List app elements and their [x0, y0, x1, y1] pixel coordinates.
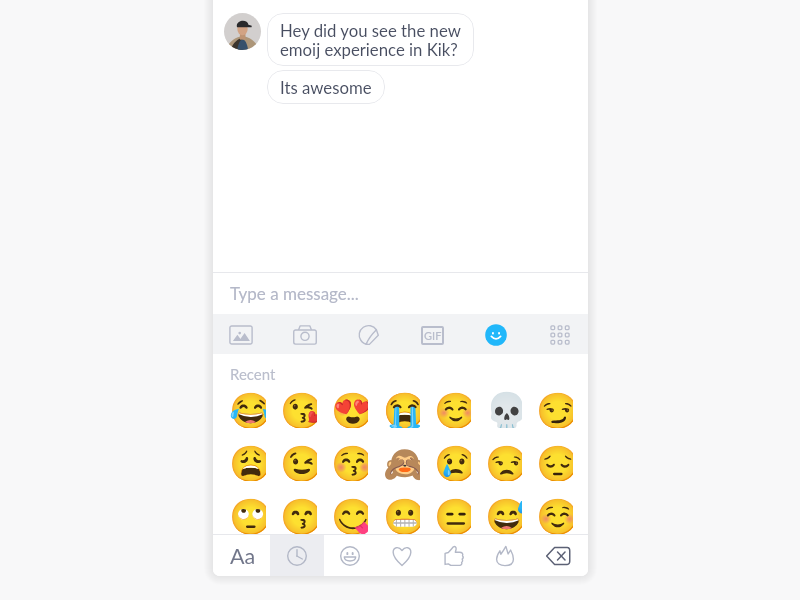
staticText: 😏	[536, 391, 573, 428]
button[interactable]: Text	[213, 535, 270, 576]
staticText: 😚	[331, 444, 368, 481]
button[interactable]: Recent	[270, 535, 324, 576]
button[interactable]: Backspace	[534, 535, 588, 576]
staticText: 😅	[485, 497, 522, 534]
button[interactable]: Emoji	[476, 314, 516, 354]
button[interactable]: Emoji	[536, 391, 573, 428]
button[interactable]: Emoji	[434, 444, 471, 481]
button[interactable]: Emoji	[536, 497, 573, 534]
staticText: Recent	[230, 365, 276, 383]
button[interactable]: Gestures	[430, 535, 482, 576]
button[interactable]: Emoji	[280, 444, 317, 481]
button[interactable]: Emoji	[229, 497, 266, 534]
staticText: Aa	[230, 543, 256, 569]
staticText: Type a message...	[230, 283, 359, 303]
button[interactable]: Emoji	[434, 497, 471, 534]
button[interactable]: Emoji	[229, 444, 266, 481]
staticText: 😢	[434, 444, 471, 481]
button[interactable]: Emoji	[485, 391, 522, 428]
staticText: Hey did you see the new emoij experience…	[280, 20, 461, 59]
button[interactable]: Emoji	[536, 444, 573, 481]
staticText: 😔	[536, 444, 573, 481]
button[interactable]: Hey did you see the new emoij experience…	[267, 13, 474, 66]
button[interactable]: Emoji	[383, 497, 420, 534]
staticText: 😭	[383, 391, 420, 428]
staticText: 😙	[280, 497, 317, 534]
button[interactable]: Profile photo	[224, 13, 261, 50]
staticText: 😉	[280, 444, 317, 481]
button[interactable]: Emoji	[485, 497, 522, 534]
staticText: 😋	[331, 497, 368, 534]
button[interactable]: Emoji	[331, 391, 368, 428]
button[interactable]: Its awesome	[267, 70, 385, 104]
staticText: 🙈	[383, 444, 420, 481]
staticText: 😬	[383, 497, 420, 534]
staticText: 💀	[485, 391, 522, 428]
button[interactable]: Camera	[285, 314, 325, 354]
button[interactable]: Emoji	[331, 497, 368, 534]
button[interactable]: Emoji	[229, 391, 266, 428]
button[interactable]: Emoji	[280, 497, 317, 534]
staticText: 😒	[485, 444, 522, 481]
button[interactable]: Emoji	[434, 391, 471, 428]
staticText: 😍	[331, 391, 368, 428]
button[interactable]: Emoji	[383, 444, 420, 481]
staticText: 😑	[434, 497, 471, 534]
button[interactable]: Smileys	[324, 535, 377, 576]
staticText: Its awesome	[280, 77, 372, 97]
button[interactable]: Photos	[221, 314, 261, 354]
button[interactable]: Keyboard	[540, 314, 580, 354]
staticText: 😩	[229, 444, 266, 481]
button[interactable]: GIF	[412, 314, 452, 354]
button[interactable]: Hearts	[377, 535, 430, 576]
button[interactable]: Type a message...	[213, 273, 588, 314]
button[interactable]: Trending	[482, 535, 534, 576]
button[interactable]: Emoji	[331, 444, 368, 481]
button[interactable]: Emoji	[383, 391, 420, 428]
staticText: ☺️	[536, 497, 573, 534]
staticText: 🙄	[229, 497, 266, 534]
button[interactable]: Stickers	[349, 314, 389, 354]
button[interactable]: Emoji	[485, 444, 522, 481]
staticText: 😂	[229, 391, 266, 428]
staticText: 😘	[280, 391, 317, 428]
staticText: GIF	[424, 329, 442, 342]
staticText: ☺️	[434, 391, 471, 428]
button[interactable]: Emoji	[280, 391, 317, 428]
